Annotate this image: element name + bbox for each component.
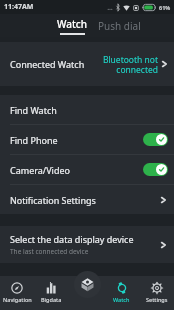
staticText: Watch [113, 296, 130, 303]
staticText: Bigdata [41, 296, 62, 303]
staticText: Find Watch [10, 104, 57, 116]
button[interactable]: Camera/Video on [143, 163, 168, 176]
button[interactable]: Select the data display device [0, 226, 174, 263]
staticText: Push dial [98, 19, 141, 33]
staticText: 61% [159, 4, 171, 11]
button[interactable]: Push dial [95, 16, 144, 36]
other: Open Select the data display device [159, 239, 168, 251]
button[interactable]: Notification Settings [0, 185, 174, 214]
staticText: Connected Watch [10, 58, 85, 70]
button[interactable]: Bigdata [34, 276, 69, 310]
staticText: Notification Settings [10, 194, 96, 206]
button[interactable]: Camera/Video [0, 155, 174, 184]
staticText: Camera/Video [10, 164, 70, 176]
button[interactable]: Home [74, 271, 101, 298]
button[interactable]: Connected Watch [0, 42, 174, 86]
other: Connected Watch details [160, 58, 169, 70]
staticText: 11:47AM [4, 2, 34, 12]
staticText: The last connected device [10, 247, 89, 256]
button[interactable]: Find Phone on [143, 133, 168, 146]
staticText: Navigation [3, 296, 32, 303]
button[interactable]: Watch [54, 17, 90, 35]
staticText: Watch [57, 17, 87, 31]
button[interactable]: Find Watch [0, 95, 174, 124]
button[interactable]: Settings [139, 276, 174, 310]
staticText: Settings [146, 296, 168, 303]
staticText: Select the data display device [10, 233, 134, 245]
button[interactable]: Find Phone [0, 125, 174, 154]
button[interactable]: Navigation [0, 276, 34, 310]
button[interactable]: Watch [104, 276, 139, 310]
staticText: Bluetooth not connected [102, 54, 158, 75]
other: Open Notification Settings [159, 194, 168, 206]
staticText: Find Phone [10, 134, 58, 146]
